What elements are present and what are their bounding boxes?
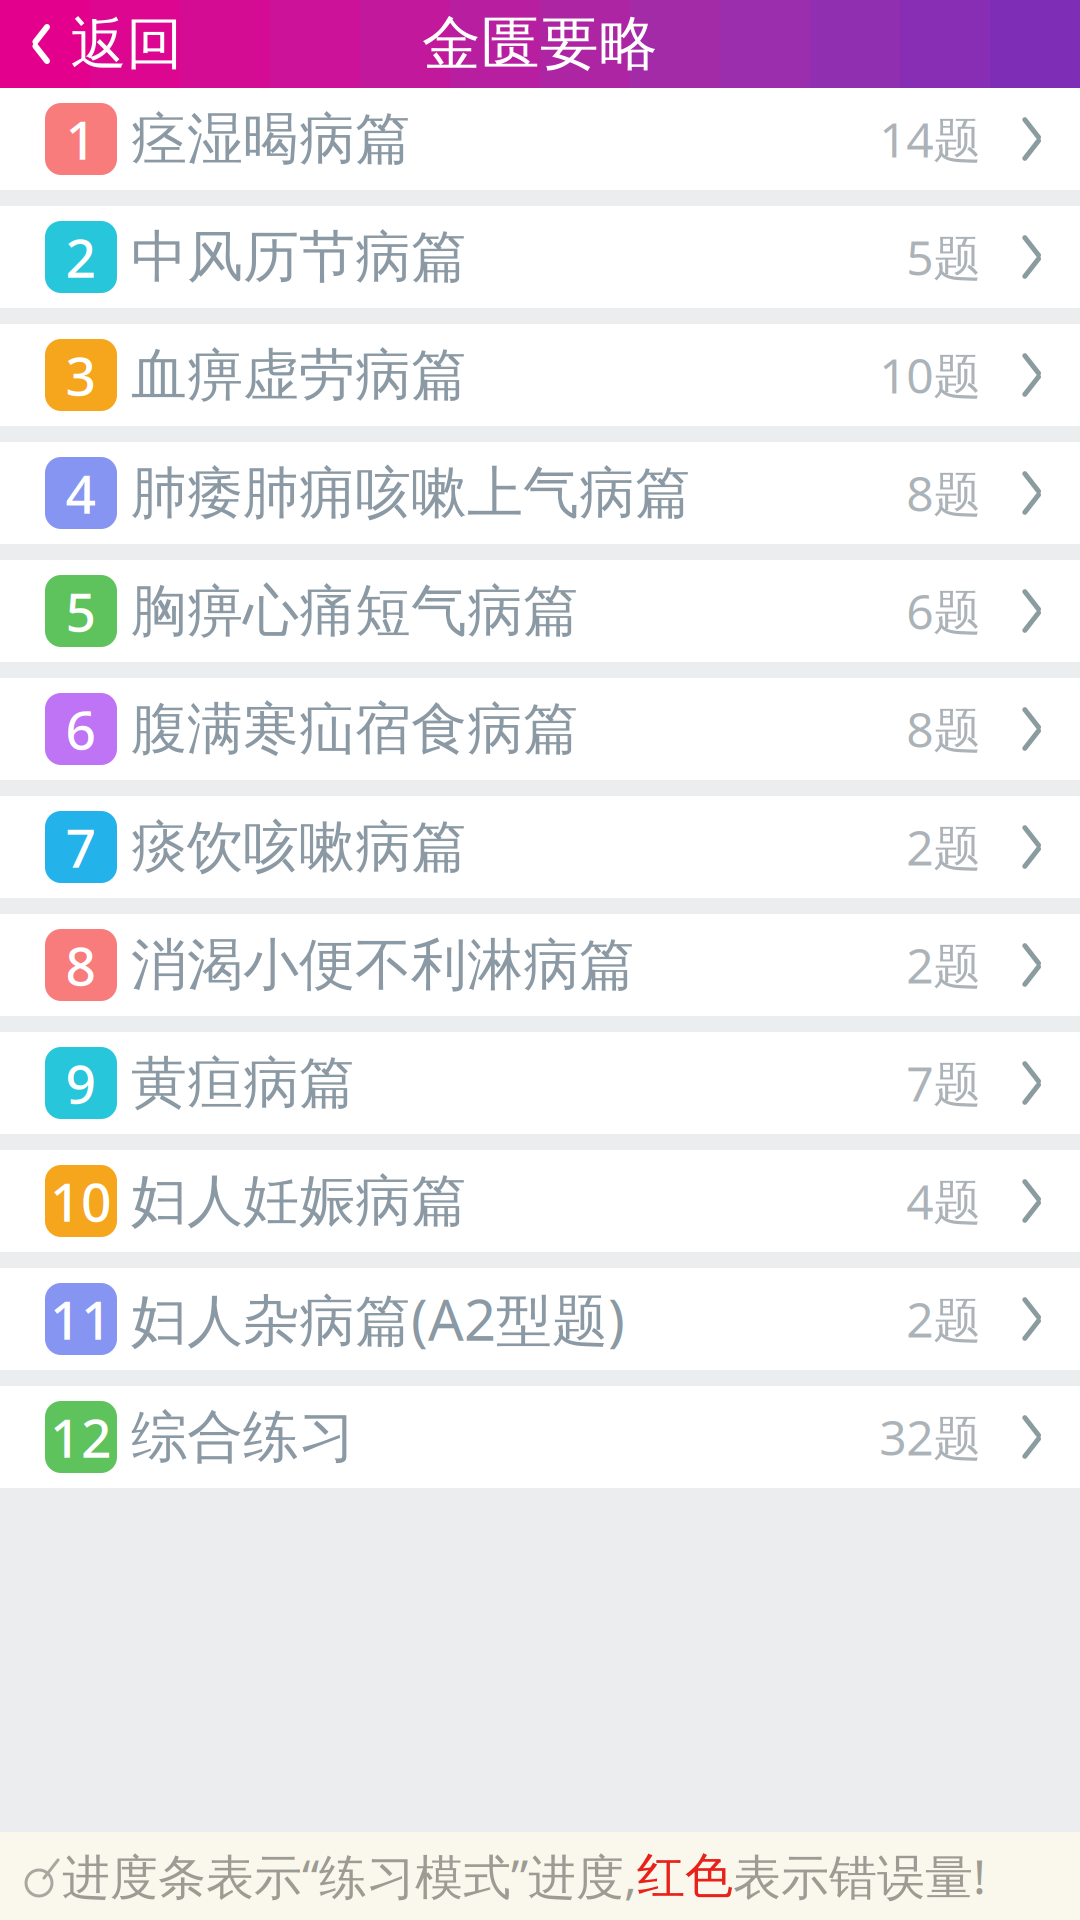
staticText: 11	[50, 1284, 112, 1354]
staticText: 8题	[906, 697, 981, 761]
staticText: 2题	[906, 1287, 981, 1351]
staticText: 6	[65, 694, 96, 764]
staticText: 妇人妊娠病篇	[131, 1167, 467, 1235]
staticText: 10题	[879, 343, 981, 407]
staticText: 12	[50, 1402, 112, 1472]
staticText: 消渴小便不利淋病篇	[131, 931, 635, 999]
staticText: 红色	[637, 1846, 733, 1905]
staticText: 胸痹心痛短气病篇	[131, 577, 579, 645]
staticText: 10	[50, 1166, 112, 1236]
staticText: 2	[65, 222, 96, 292]
staticText: 3	[65, 340, 96, 410]
staticText: 痰饮咳嗽病篇	[131, 813, 467, 881]
staticText: 血痹虚劳病篇	[131, 341, 467, 409]
staticText: 进度条表示“练习模式”进度,	[62, 1844, 637, 1908]
staticText: 8题	[906, 461, 981, 525]
staticText: 5	[65, 576, 96, 646]
button[interactable]: 3	[0, 324, 1080, 426]
staticText: 2题	[906, 933, 981, 997]
staticText: 黄疸病篇	[131, 1049, 355, 1117]
button[interactable]: 4	[0, 442, 1080, 544]
button[interactable]: 10	[0, 1150, 1080, 1252]
staticText: 腹满寒疝宿食病篇	[131, 695, 579, 763]
staticText: 妇人杂病篇(A2型题)	[131, 1282, 625, 1356]
button[interactable]: 返回	[0, 0, 212, 88]
staticText: 1	[65, 104, 96, 174]
staticText: 4	[65, 458, 96, 528]
button[interactable]: 5	[0, 560, 1080, 662]
staticText: 综合练习	[131, 1403, 355, 1471]
button[interactable]: 8	[0, 914, 1080, 1016]
staticText: 表示错误量!	[733, 1844, 986, 1908]
staticText: 5题	[906, 225, 981, 289]
button[interactable]: 12	[0, 1386, 1080, 1488]
button[interactable]: 11	[0, 1268, 1080, 1370]
staticText: 8	[65, 930, 96, 1000]
staticText: 9	[65, 1048, 96, 1118]
staticText: 2题	[906, 815, 981, 879]
staticText: 7题	[906, 1051, 981, 1115]
staticText: 金匮要略	[422, 8, 658, 80]
staticText: 返回	[70, 10, 182, 78]
button[interactable]: 1	[0, 88, 1080, 190]
staticText: 14题	[879, 107, 981, 171]
button[interactable]: 6	[0, 678, 1080, 780]
staticText: 4题	[906, 1169, 981, 1233]
staticText: 肺痿肺痈咳嗽上气病篇	[131, 459, 691, 527]
staticText: 中风历节病篇	[131, 223, 467, 291]
staticText: 痉湿暍病篇	[131, 105, 411, 173]
staticText: 32题	[879, 1405, 981, 1469]
button[interactable]: 2	[0, 206, 1080, 308]
staticText: 6题	[906, 579, 981, 643]
staticText: 7	[65, 812, 96, 882]
button[interactable]: 9	[0, 1032, 1080, 1134]
button[interactable]: 7	[0, 796, 1080, 898]
